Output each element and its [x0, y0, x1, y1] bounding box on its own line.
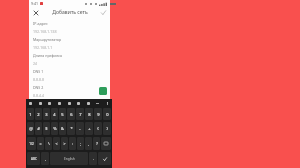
- button[interactable]: Close: [31, 8, 40, 17]
- staticText: =: [39, 141, 42, 146]
- staticText: 7: [79, 112, 82, 117]
- button[interactable]: Enter: [98, 152, 111, 165]
- button[interactable]: Save network: [99, 87, 107, 95]
- button[interactable]: ;: [77, 137, 84, 150]
- button[interactable]: ,: [85, 137, 92, 150]
- staticText: #: [37, 126, 40, 131]
- staticText: 8.8.4.4: [33, 93, 45, 98]
- staticText: 8: [88, 112, 91, 117]
- button[interactable]: Confirm: [99, 8, 108, 17]
- staticText: ;: [80, 141, 81, 146]
- button[interactable]: 6: [67, 108, 75, 120]
- staticText: 0: [106, 112, 109, 117]
- button[interactable]: Toolbar action 4: [57, 101, 62, 106]
- staticText: 9: [97, 112, 100, 117]
- staticText: 9:41: [31, 1, 38, 6]
- button[interactable]: -: [76, 122, 84, 135]
- button[interactable]: 4: [51, 108, 58, 120]
- button[interactable]: Toolbar action 3: [47, 101, 52, 106]
- staticText: +: [88, 126, 91, 131]
- staticText: 1: [29, 112, 32, 117]
- button[interactable]: +: [85, 122, 93, 135]
- button[interactable]: Toolbar action 7: [86, 101, 91, 106]
- button[interactable]: <: [53, 137, 60, 150]
- staticText: <: [55, 141, 58, 146]
- button[interactable]: 1: [27, 108, 34, 120]
- button[interactable]: 1/2: [27, 137, 36, 150]
- button[interactable]: 9: [94, 108, 102, 120]
- button[interactable]: .: [89, 152, 97, 165]
- staticText: (: [97, 126, 99, 131]
- staticText: >: [63, 141, 66, 146]
- staticText: 24: [33, 61, 38, 66]
- staticText: 5: [61, 112, 64, 117]
- button[interactable]: ,: [41, 152, 49, 165]
- staticText: 192.168.1.1: [33, 45, 53, 50]
- button[interactable]: *: [67, 122, 75, 135]
- button[interactable]: English: [50, 152, 88, 165]
- staticText: ,: [45, 156, 46, 161]
- button[interactable]: Backspace: [101, 137, 111, 150]
- staticText: English: [64, 157, 75, 161]
- staticText: ): [106, 126, 108, 131]
- button[interactable]: Toolbar action 2: [38, 101, 43, 106]
- staticText: :: [72, 141, 73, 146]
- button[interactable]: Длина префикса: [29, 50, 110, 66]
- button[interactable]: 7: [76, 108, 84, 120]
- button[interactable]: :: [69, 137, 76, 150]
- button[interactable]: DNS 1: [29, 66, 110, 82]
- staticText: %: [53, 126, 57, 131]
- staticText: 8.8.8.8: [33, 77, 45, 82]
- staticText: \: [48, 141, 50, 146]
- button[interactable]: IP-адрес: [29, 18, 110, 34]
- staticText: Добавить сеть: [52, 9, 88, 16]
- button[interactable]: ABC: [27, 152, 40, 165]
- staticText: 2: [37, 112, 40, 117]
- button[interactable]: 3: [43, 108, 50, 120]
- staticText: &: [61, 126, 64, 131]
- button[interactable]: 2: [35, 108, 42, 120]
- button[interactable]: More: [95, 101, 100, 106]
- button[interactable]: 8: [85, 108, 93, 120]
- staticText: 192.168.1.138: [33, 29, 57, 34]
- staticText: 3: [45, 112, 48, 117]
- button[interactable]: #: [35, 122, 42, 135]
- button[interactable]: &: [59, 122, 66, 135]
- button[interactable]: Toolbar action 6: [76, 101, 81, 106]
- button[interactable]: Toolbar action 5: [67, 101, 72, 106]
- staticText: ?: [96, 141, 98, 146]
- button[interactable]: @: [27, 122, 34, 135]
- button[interactable]: DNS 2: [29, 82, 110, 98]
- staticText: .: [93, 156, 94, 161]
- staticText: 1/2: [29, 142, 34, 146]
- staticText: -: [79, 126, 81, 131]
- button[interactable]: Voice input: [105, 101, 110, 106]
- staticText: @: [29, 126, 33, 131]
- button[interactable]: ?: [93, 137, 100, 150]
- button[interactable]: %: [51, 122, 58, 135]
- button[interactable]: Toolbar action 1: [28, 101, 33, 106]
- staticText: IP-адрес: [33, 21, 48, 26]
- button[interactable]: ): [103, 122, 111, 135]
- staticText: 4: [53, 112, 56, 117]
- button[interactable]: $: [43, 122, 50, 135]
- button[interactable]: \: [45, 137, 52, 150]
- button[interactable]: Маршрутизатор: [29, 34, 110, 50]
- staticText: $: [45, 126, 48, 131]
- staticText: ,: [88, 141, 89, 146]
- staticText: DNS 1: [33, 69, 44, 74]
- staticText: ABC: [31, 157, 37, 161]
- button[interactable]: =: [37, 137, 44, 150]
- staticText: Длина префикса: [33, 53, 63, 58]
- staticText: Маршрутизатор: [33, 37, 62, 42]
- button[interactable]: 0: [103, 108, 111, 120]
- button[interactable]: (: [94, 122, 102, 135]
- staticText: DNS 2: [33, 85, 44, 90]
- staticText: *: [70, 126, 73, 131]
- button[interactable]: >: [61, 137, 68, 150]
- staticText: 6: [70, 112, 73, 117]
- button[interactable]: 5: [59, 108, 66, 120]
